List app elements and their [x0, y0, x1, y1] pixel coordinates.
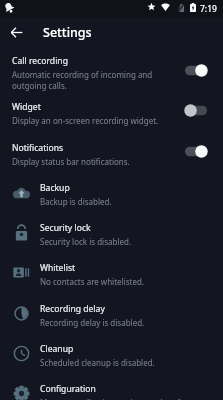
button[interactable]: Notifications — [0, 142, 223, 167]
staticText: Call recording — [12, 55, 68, 67]
staticText: Manage application settings and preferen… — [40, 397, 212, 400]
staticText: Backup — [40, 182, 70, 194]
staticText: Security lock is disabled. — [40, 236, 132, 247]
staticText: No contacts are whitelisted. — [40, 276, 144, 287]
button[interactable]: Widget — [0, 101, 223, 126]
staticText: Recording delay — [40, 303, 105, 315]
staticText: Scheduled cleanup is disabled. — [40, 357, 155, 368]
button[interactable]: Configuration — [0, 383, 223, 400]
staticText: Settings — [43, 24, 92, 41]
button[interactable]: Whitelist — [0, 262, 223, 287]
staticText: Widget — [12, 101, 41, 113]
staticText: Security lock — [40, 222, 91, 234]
button[interactable]: Recording delay — [0, 303, 223, 328]
staticText: Configuration — [40, 383, 96, 395]
button[interactable]: Cleanup — [0, 343, 223, 368]
staticText: Cleanup — [40, 343, 74, 355]
staticText: Display an on-screen recording widget. — [12, 115, 159, 126]
staticText: Recording delay is disabled. — [40, 317, 145, 328]
staticText: Backup is disabled. — [40, 196, 112, 207]
staticText: Notifications — [12, 142, 64, 154]
button[interactable]: Backup — [0, 182, 223, 207]
staticText: 7:19 — [200, 3, 217, 15]
staticText: Display status bar notifications. — [12, 156, 130, 167]
staticText: Automatic recording of incoming and — [12, 69, 153, 80]
button[interactable]: Back — [4, 20, 28, 44]
staticText: outgoing calls. — [12, 80, 67, 91]
button[interactable]: Call recording — [0, 55, 223, 91]
button[interactable]: Security lock — [0, 222, 223, 247]
staticText: Whitelist — [40, 262, 76, 274]
